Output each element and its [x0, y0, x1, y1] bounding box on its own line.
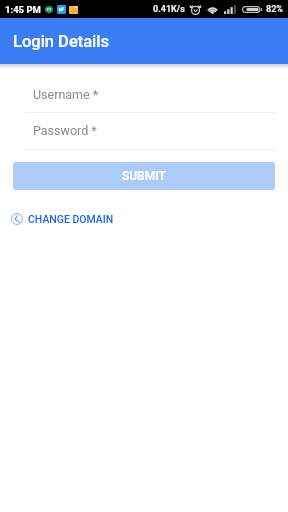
- button[interactable]: Change domain: [10, 211, 115, 227]
- staticText: Username *: [33, 87, 99, 102]
- staticText: Password *: [33, 123, 97, 138]
- staticText: 1:45 PM: [5, 4, 41, 15]
- staticText: Login Details: [13, 32, 110, 51]
- button[interactable]: Username *: [25, 81, 275, 113]
- button[interactable]: Password *: [25, 117, 275, 150]
- other: Change domain: [11, 213, 23, 225]
- staticText: 0.41K/s: [153, 4, 185, 15]
- staticText: SUBMIT: [122, 169, 166, 183]
- staticText: 82%: [266, 4, 283, 15]
- staticText: CHANGE DOMAIN: [28, 213, 114, 225]
- button[interactable]: SUBMIT: [13, 162, 275, 190]
